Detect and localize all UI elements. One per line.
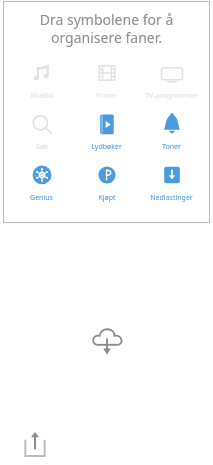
staticText: TV-programmer [145, 91, 198, 101]
button[interactable]: Nedlastinger [139, 161, 204, 205]
staticText: Filmer [96, 91, 117, 101]
button[interactable]: TV-programmer [139, 59, 204, 103]
staticText: Søk [36, 142, 48, 152]
staticText: Musikk [30, 91, 54, 101]
button[interactable]: Musikk [9, 59, 74, 103]
button[interactable]: Del [24, 431, 46, 457]
button[interactable]: Kjøpt [74, 161, 139, 205]
staticText: Dra symbolene for å organisere faner. [3, 10, 210, 47]
button[interactable]: Filmer [74, 59, 139, 103]
button[interactable]: Lydbøker [74, 110, 139, 154]
staticText: Kjøpt [98, 193, 116, 203]
staticText: Lydbøker [91, 142, 122, 152]
staticText: Nedlastinger [150, 193, 193, 203]
staticText: Toner [162, 142, 181, 152]
staticText: Genius [30, 193, 53, 203]
button[interactable]: Søk [9, 110, 74, 154]
button[interactable]: Toner [139, 110, 204, 154]
button[interactable]: Last ned fra iCloud [90, 325, 124, 355]
button[interactable]: Genius [9, 161, 74, 205]
